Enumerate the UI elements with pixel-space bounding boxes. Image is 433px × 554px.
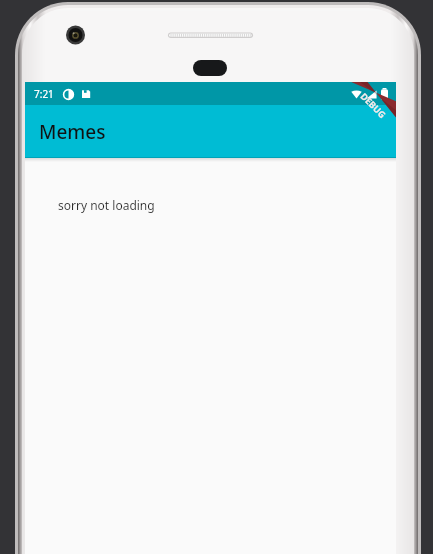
staticText: sorry not loading [58,197,155,213]
staticText: 7:21 [34,87,54,101]
other: Debug build banner [332,82,396,146]
staticText: Memes [39,119,106,145]
staticText: DEBUG [358,90,389,120]
